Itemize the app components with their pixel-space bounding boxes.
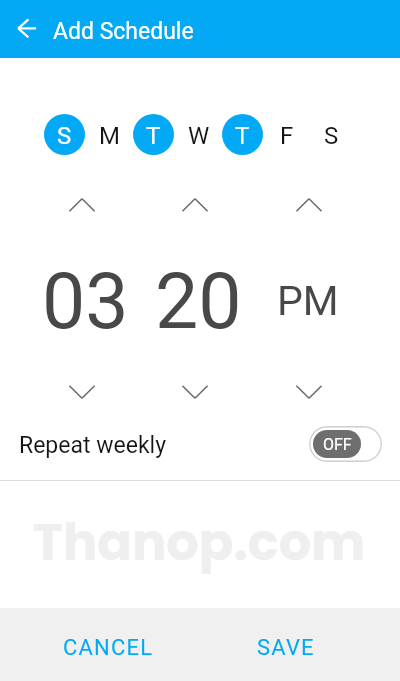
button[interactable]: CANCEL	[44, 614, 172, 681]
staticText: 20	[155, 257, 242, 347]
staticText: PM	[277, 277, 339, 325]
button[interactable]: Increase	[171, 188, 219, 222]
button[interactable]: Decrease	[171, 375, 219, 409]
staticText: F	[280, 122, 294, 150]
button[interactable]: M	[89, 114, 130, 155]
staticText: S	[57, 122, 72, 150]
button[interactable]: T	[133, 114, 174, 155]
button[interactable]: Decrease	[285, 375, 333, 409]
staticText: SAVE	[257, 635, 315, 661]
button[interactable]: W	[178, 114, 219, 155]
button[interactable]: Increase	[58, 188, 106, 222]
button[interactable]: Increase	[285, 188, 333, 222]
button[interactable]: S	[311, 114, 352, 155]
button[interactable]: SAVE	[233, 614, 339, 681]
button[interactable]: Back	[9, 10, 45, 47]
staticText: Add Schedule	[53, 18, 194, 45]
button[interactable]: Decrease	[58, 375, 106, 409]
staticText: Repeat weekly	[19, 432, 167, 459]
staticText: 03	[42, 257, 129, 347]
staticText: T	[235, 122, 250, 150]
button[interactable]: T	[222, 114, 263, 155]
staticText: Thanop.com	[0, 506, 399, 577]
staticText: M	[99, 122, 120, 150]
staticText: T	[146, 122, 161, 150]
staticText: W	[188, 122, 210, 150]
staticText: CANCEL	[63, 635, 154, 661]
button[interactable]: S	[44, 114, 85, 155]
staticText: S	[324, 122, 339, 150]
staticText: OFF	[323, 435, 352, 454]
button[interactable]: OFF	[309, 426, 382, 462]
button[interactable]: F	[266, 114, 307, 155]
